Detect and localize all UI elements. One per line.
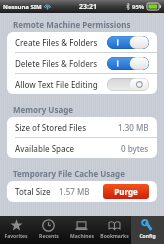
button[interactable]: Favorites bbox=[0, 216, 32, 244]
staticText: Remote Machine Permissions bbox=[13, 19, 131, 30]
staticText: Purge bbox=[114, 186, 138, 197]
button[interactable]: Size of Stored Files bbox=[7, 117, 157, 137]
staticText: Machines bbox=[70, 233, 94, 240]
button[interactable]: Delete Files & Folders bbox=[7, 53, 157, 73]
staticText: Total Size bbox=[15, 186, 51, 197]
staticText: Size of Stored Files bbox=[15, 122, 87, 133]
staticText: Delete Files & Folders bbox=[15, 58, 98, 69]
staticText: Bookmarks bbox=[100, 233, 129, 240]
staticText: Available Space bbox=[15, 143, 75, 154]
staticText: Favorites bbox=[4, 233, 28, 240]
button[interactable]: Off bbox=[107, 78, 149, 91]
button[interactable]: Allow Text File Editing bbox=[7, 74, 157, 94]
staticText: Recents bbox=[39, 233, 59, 240]
staticText: Temporary File Cache Usage bbox=[13, 168, 125, 179]
button[interactable]: Machines bbox=[65, 216, 98, 244]
staticText: Create Files & Folders bbox=[15, 37, 98, 48]
staticText: Config bbox=[139, 233, 156, 240]
staticText: 95% bbox=[132, 3, 145, 11]
staticText: 1.30 MB bbox=[118, 122, 149, 133]
button[interactable]: Bookmarks bbox=[98, 216, 131, 244]
button[interactable]: Config bbox=[131, 216, 164, 244]
button[interactable]: Recents bbox=[32, 216, 65, 244]
button[interactable]: On bbox=[107, 36, 149, 49]
button[interactable]: Available Space bbox=[7, 138, 157, 158]
button[interactable]: On bbox=[107, 57, 149, 70]
staticText: Allow Text File Editing bbox=[15, 79, 98, 90]
button[interactable]: Purge bbox=[103, 184, 149, 199]
staticText: Memory Usage bbox=[13, 104, 74, 115]
staticText: 1.57 MB bbox=[59, 186, 90, 197]
button[interactable]: Create Files & Folders bbox=[7, 32, 157, 52]
staticText: 23:21 bbox=[79, 2, 97, 12]
staticText: Nessuna SIM bbox=[3, 3, 42, 11]
staticText: 0 bytes bbox=[121, 143, 149, 154]
